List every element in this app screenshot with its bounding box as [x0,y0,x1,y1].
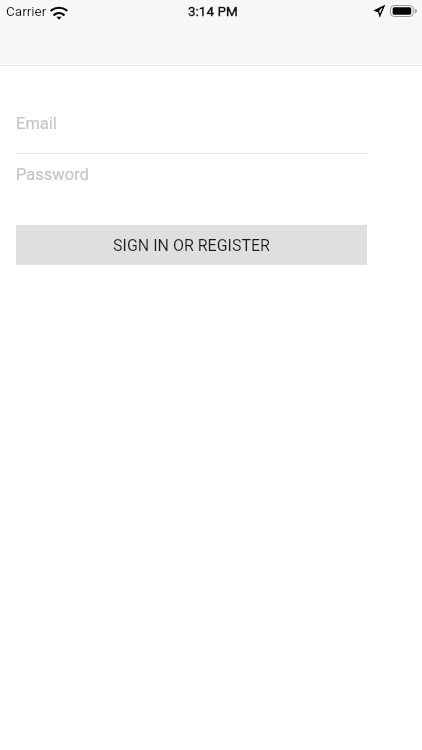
button[interactable]: Email [16,114,367,154]
other: Wi-Fi signal [52,6,66,16]
staticText: Password [16,165,89,184]
staticText: Email [16,114,57,133]
button[interactable]: SIGN IN OR REGISTER [16,225,367,265]
button[interactable]: Password [16,165,367,193]
other: Location services active [375,6,384,16]
staticText: Carrier [6,3,47,19]
other: Battery full [390,5,417,17]
staticText: SIGN IN OR REGISTER [113,236,270,255]
staticText: 3:14 PM [188,3,238,19]
